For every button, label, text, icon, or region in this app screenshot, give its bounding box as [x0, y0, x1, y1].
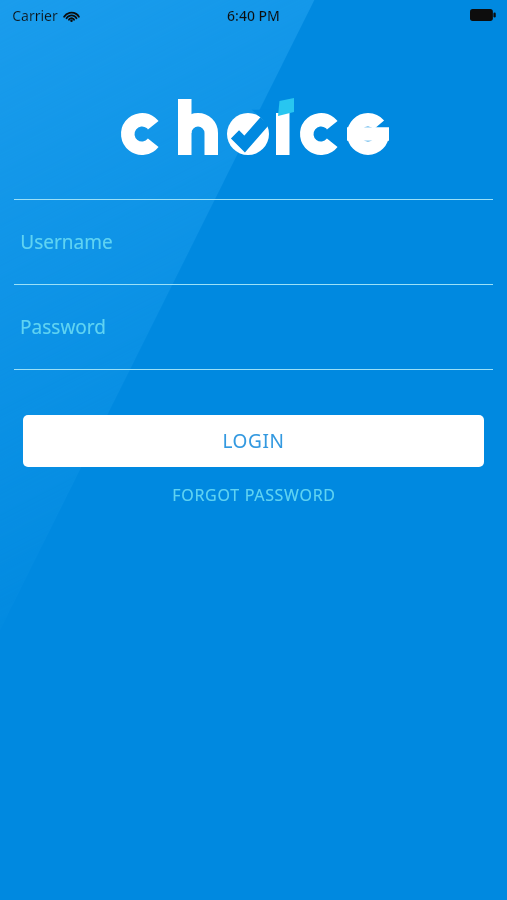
button[interactable]: LOGIN	[23, 415, 484, 467]
staticText: FORGOT PASSWORD	[172, 484, 336, 506]
staticText: Username	[20, 229, 113, 255]
button[interactable]: Username	[0, 200, 507, 284]
other: choice	[116, 96, 392, 158]
staticText: Password	[20, 314, 106, 340]
button[interactable]: Password	[0, 285, 507, 369]
staticText: Carrier	[12, 6, 58, 25]
staticText: LOGIN	[222, 428, 285, 454]
staticText: 6:40 PM	[227, 6, 280, 25]
button[interactable]: FORGOT PASSWORD	[23, 478, 484, 512]
